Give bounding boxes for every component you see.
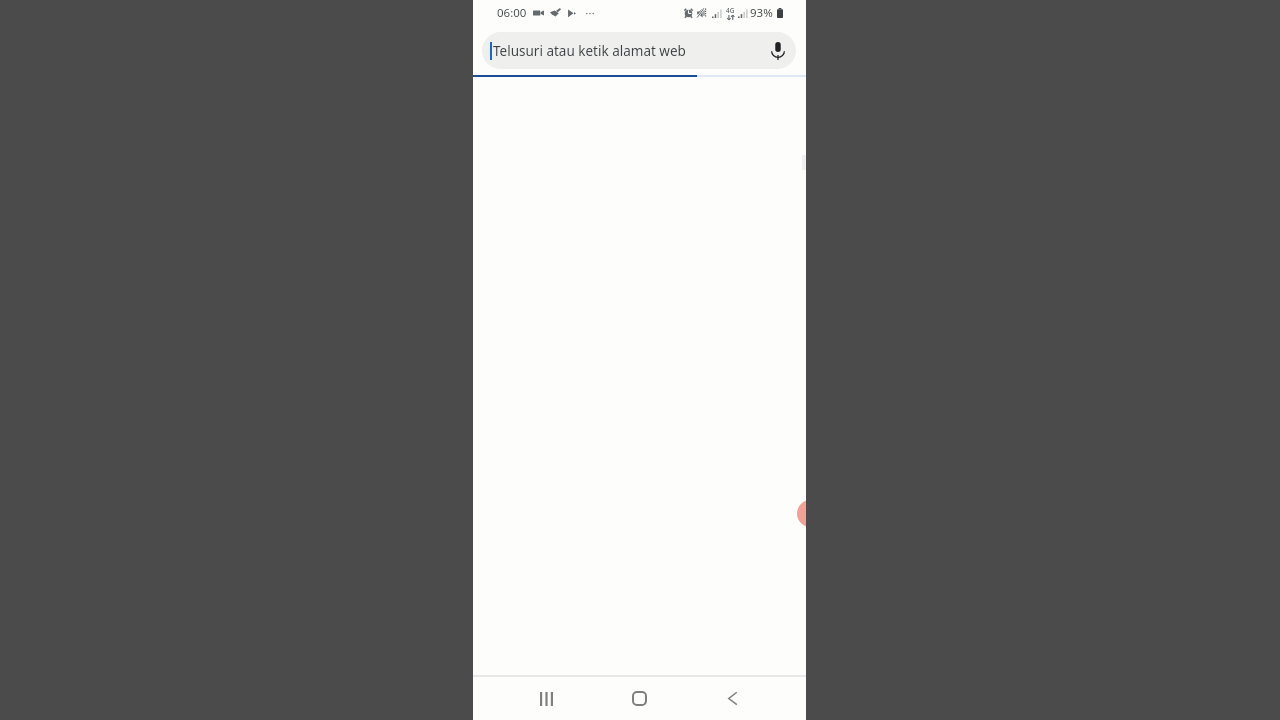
staticText: 4G — [726, 6, 735, 15]
button[interactable]: Recent apps — [525, 677, 568, 720]
staticText: Telusuri atau ketik alamat web — [493, 42, 686, 60]
button[interactable]: Home — [618, 677, 661, 720]
button[interactable]: Floating bubble — [797, 500, 806, 527]
staticText: 06:00 — [497, 5, 527, 21]
other: Voice search — [771, 42, 785, 60]
staticText: 93% — [750, 5, 773, 21]
button[interactable]: Telusuri atau ketik alamat web — [482, 32, 796, 69]
button[interactable]: Back — [711, 677, 754, 720]
